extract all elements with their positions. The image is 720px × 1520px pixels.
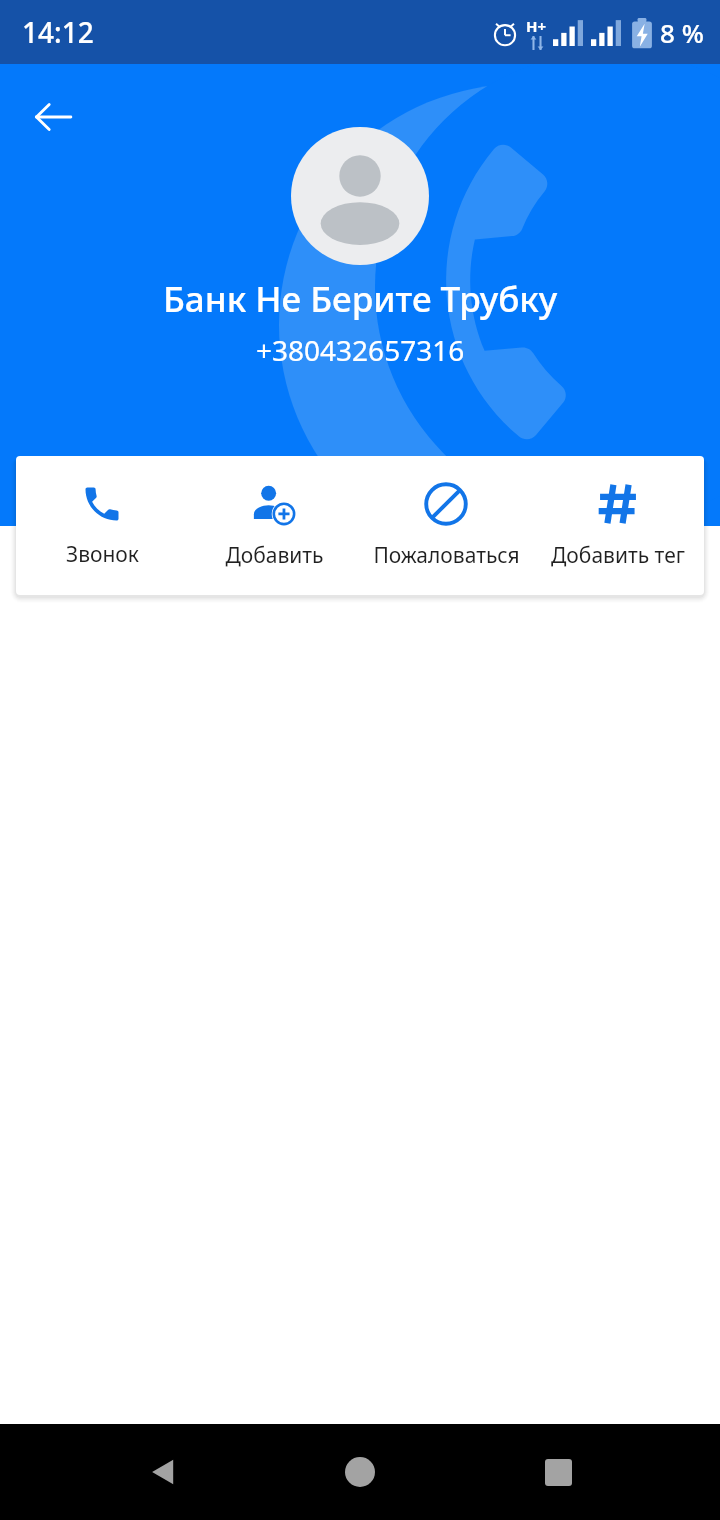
staticText: 8 % xyxy=(660,15,704,50)
staticText: Пожаловаться xyxy=(373,541,520,570)
button[interactable]: Back xyxy=(128,1437,198,1507)
button[interactable]: Recents xyxy=(523,1437,593,1507)
button[interactable]: Звонок xyxy=(16,456,188,595)
staticText: 14:12 xyxy=(22,13,94,51)
staticText: +380432657316 xyxy=(256,331,465,369)
button[interactable]: Добавить тег xyxy=(532,456,704,595)
staticText: H+ xyxy=(526,16,547,36)
staticText: Звонок xyxy=(66,540,139,569)
staticText: Банк Не Берите Трубку xyxy=(163,275,558,323)
button[interactable]: Home xyxy=(325,1437,395,1507)
staticText: Добавить тег xyxy=(551,541,685,570)
button[interactable]: Добавить xyxy=(188,456,360,595)
staticText: Добавить xyxy=(225,541,324,570)
button[interactable]: Пожаловаться xyxy=(360,456,532,595)
button[interactable]: Back xyxy=(22,86,84,148)
